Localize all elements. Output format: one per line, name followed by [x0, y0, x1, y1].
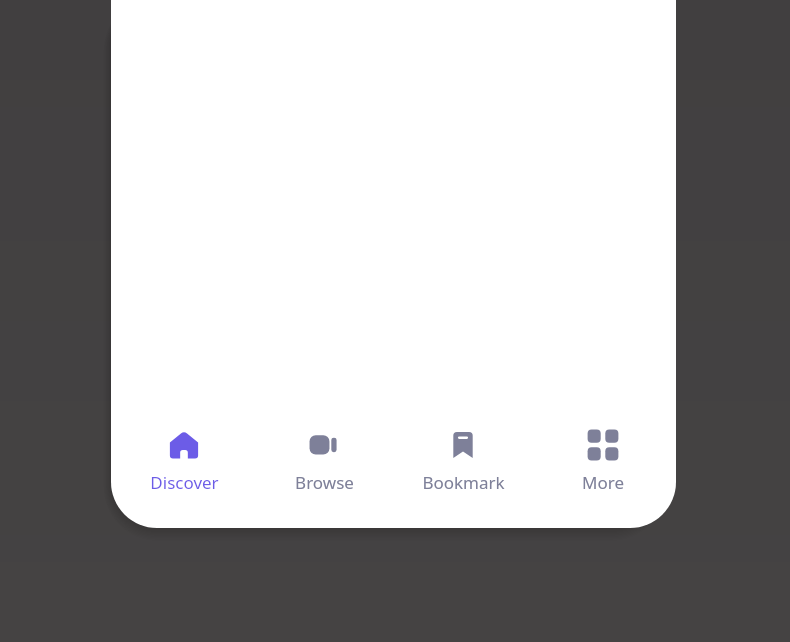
- staticText: More: [582, 471, 624, 494]
- button[interactable]: Discover: [118, 416, 250, 512]
- button[interactable]: Bookmark: [397, 416, 529, 512]
- staticText: Discover: [150, 471, 219, 494]
- button[interactable]: More: [537, 416, 669, 512]
- staticText: Bookmark: [422, 471, 505, 494]
- staticText: Browse: [295, 471, 354, 494]
- button[interactable]: Browse: [258, 416, 390, 512]
